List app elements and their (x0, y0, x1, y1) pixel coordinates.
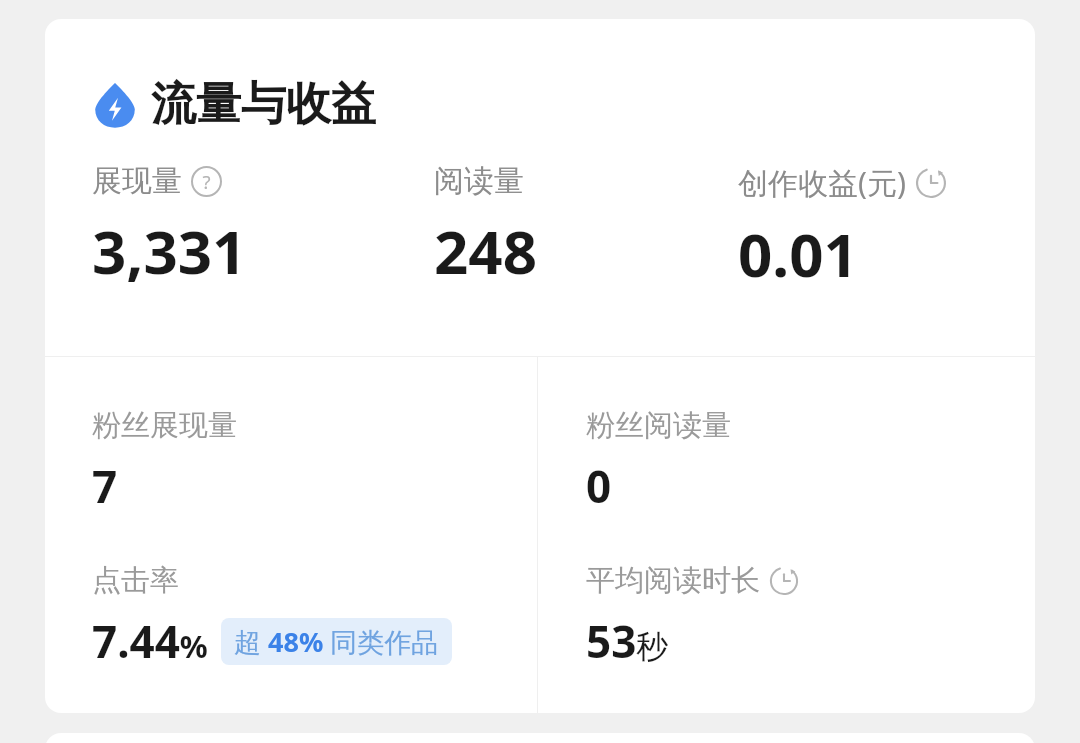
staticText: 粉丝阅读量 (586, 407, 731, 444)
staticText: 点击率 (92, 562, 179, 599)
staticText: 粉丝展现量 (92, 407, 237, 444)
staticText: 7.44% (92, 611, 208, 671)
button[interactable]: 点击率 (92, 562, 452, 671)
staticText: 0 (586, 456, 612, 516)
staticText: 阅读量 (434, 162, 524, 200)
staticText: 53秒 (586, 611, 669, 671)
button[interactable]: 帮助说明 (191, 166, 222, 197)
button[interactable]: 粉丝展现量 (92, 407, 237, 516)
button[interactable]: 粉丝阅读量 (586, 407, 731, 516)
staticText: 7 (92, 456, 118, 516)
button[interactable]: 收益结算中 (915, 167, 947, 199)
button[interactable]: 流量与收益 (92, 76, 376, 133)
staticText: 创作收益(元) (738, 162, 906, 203)
staticText: 展现量 (92, 162, 182, 200)
staticText: 248 (434, 210, 537, 292)
button[interactable]: 超 48% 同类作品 (221, 618, 452, 665)
button[interactable]: 平均阅读时长 (586, 562, 799, 671)
staticText: 平均阅读时长 (586, 562, 760, 599)
button[interactable]: 创作收益(元) (738, 162, 1035, 295)
staticText: 3,331 (92, 210, 247, 292)
button[interactable]: 统计说明 (769, 566, 799, 596)
button[interactable]: 阅读量 (434, 162, 738, 292)
button[interactable]: 展现量 (92, 162, 434, 292)
staticText: 0.01 (738, 213, 858, 295)
staticText: 超 48% 同类作品 (234, 623, 439, 660)
staticText: 流量与收益 (151, 76, 376, 133)
staticText: ? (202, 169, 211, 194)
